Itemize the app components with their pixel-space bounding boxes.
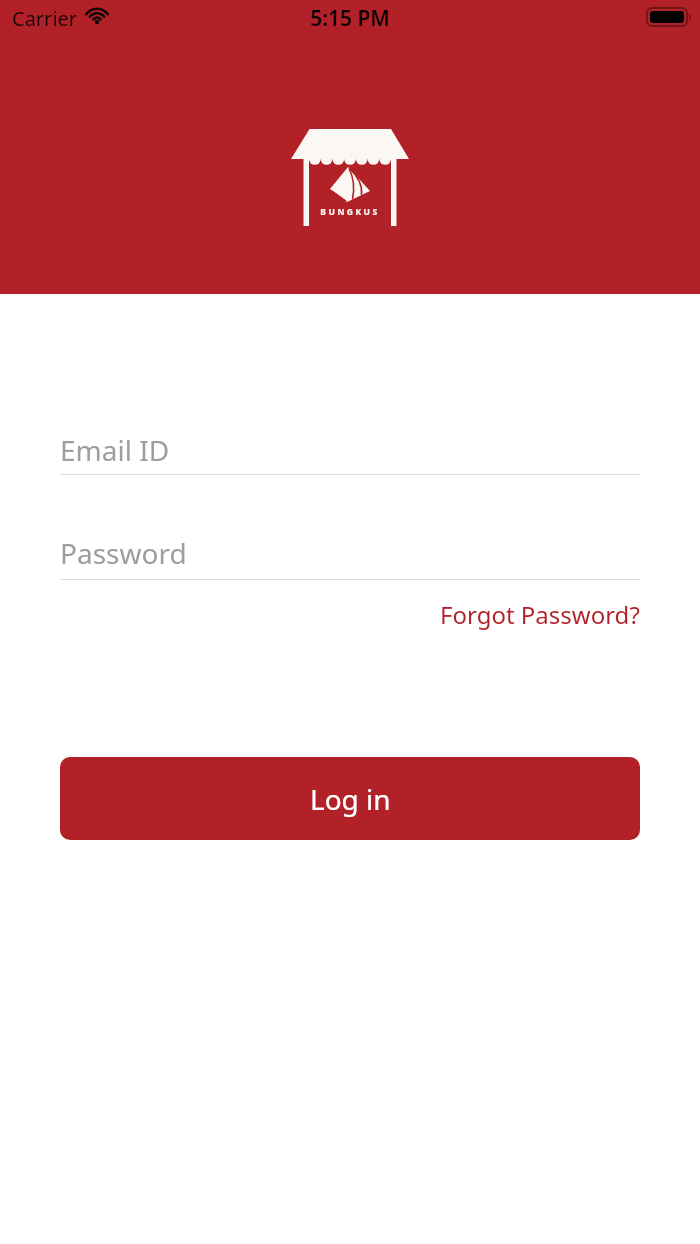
staticText: Log in — [310, 780, 391, 818]
staticText: Forgot Password? — [440, 598, 640, 631]
staticText: Carrier — [12, 5, 78, 32]
button[interactable]: Password — [60, 528, 640, 580]
button[interactable]: Email ID — [60, 425, 640, 475]
staticText: Password — [60, 534, 187, 572]
staticText: BUNGKUS — [0, 206, 700, 218]
staticText: Email ID — [60, 431, 170, 469]
staticText: 5:15 PM — [0, 4, 700, 33]
button[interactable]: Log in — [60, 757, 640, 840]
button[interactable]: Forgot Password? — [440, 598, 640, 631]
